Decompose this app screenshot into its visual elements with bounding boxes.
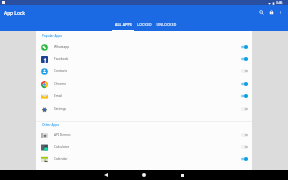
button[interactable]: Calculator — [36, 141, 252, 153]
staticText: API Demos — [54, 133, 71, 137]
staticText: ALL APPS — [115, 22, 132, 27]
button[interactable] — [240, 155, 248, 163]
button[interactable] — [240, 55, 248, 63]
button[interactable] — [240, 92, 248, 100]
staticText: Chrome — [54, 82, 66, 86]
staticText: Calculator — [54, 145, 70, 149]
button[interactable]: More options — [276, 8, 285, 17]
button[interactable]: LOCKED — [134, 20, 155, 31]
button[interactable]: Chrome — [36, 78, 252, 90]
staticText: Email — [54, 94, 63, 98]
staticText: Facebook — [54, 57, 69, 61]
staticText: Whatsapp — [54, 45, 70, 49]
button[interactable]: Calendar — [36, 153, 252, 165]
button[interactable] — [240, 105, 248, 113]
button[interactable]: Contacts — [36, 65, 252, 77]
button[interactable]: Home — [137, 170, 151, 180]
button[interactable] — [240, 143, 248, 151]
button[interactable] — [240, 131, 248, 139]
staticText: 3:46 — [276, 1, 283, 5]
staticText: LOCKED — [137, 22, 152, 27]
button[interactable] — [240, 67, 248, 75]
button[interactable]: Recents — [175, 170, 189, 180]
button[interactable]: Settings — [36, 103, 252, 115]
button[interactable]: UNLOCKED — [156, 20, 177, 31]
staticText: Settings — [54, 107, 67, 111]
button[interactable] — [240, 43, 248, 51]
button[interactable]: ALL APPS — [112, 20, 134, 31]
button[interactable]: Lock — [267, 8, 276, 17]
staticText: Contacts — [54, 69, 68, 73]
staticText: Other Apps — [42, 123, 60, 127]
staticText: App Lock — [4, 10, 25, 17]
button[interactable]: Search — [257, 8, 266, 17]
button[interactable]: Whatsapp — [36, 41, 252, 53]
button[interactable]: API Demos — [36, 129, 252, 141]
staticText: UNLOCKED — [156, 22, 177, 27]
button[interactable]: Email — [36, 90, 252, 102]
staticText: Popular Apps — [42, 34, 63, 38]
button[interactable]: Back — [99, 170, 113, 180]
staticText: Calendar — [54, 157, 68, 161]
button[interactable]: Facebook — [36, 53, 252, 65]
button[interactable] — [240, 80, 248, 88]
